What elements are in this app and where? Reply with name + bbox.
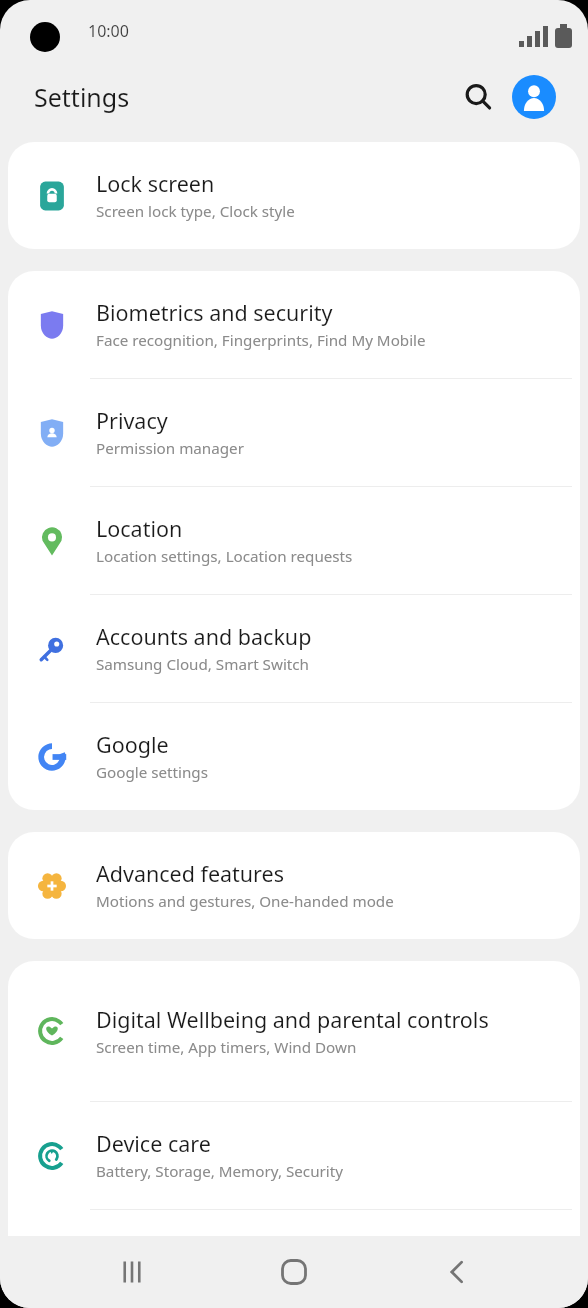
staticText: Location settings, Location requests — [96, 546, 353, 567]
staticText: Privacy — [96, 406, 168, 435]
button[interactable]: Privacy — [8, 379, 580, 486]
staticText: Biometrics and security — [96, 298, 333, 327]
staticText: Apps — [96, 1233, 147, 1262]
button[interactable]: Location — [8, 487, 580, 594]
staticText: Google settings — [96, 762, 208, 783]
button[interactable]: Lock screen — [8, 142, 580, 249]
button[interactable]: Back — [426, 1241, 488, 1303]
staticText: Digital Wellbeing and parental controls — [96, 1005, 489, 1034]
staticText: Lock screen — [96, 169, 215, 198]
staticText: Settings — [34, 80, 130, 114]
button[interactable]: Device care — [8, 1102, 580, 1209]
button[interactable]: Biometrics and security — [8, 271, 580, 378]
staticText: Motions and gestures, One-handed mode — [96, 891, 394, 912]
button[interactable]: Recents — [101, 1241, 163, 1303]
staticText: Location — [96, 514, 183, 543]
button[interactable]: Advanced features — [8, 832, 580, 939]
staticText: 10:00 — [88, 20, 129, 42]
staticText: Face recognition, Fingerprints, Find My … — [96, 330, 426, 351]
button[interactable]: Accounts and backup — [8, 595, 580, 702]
button[interactable]: Home — [263, 1241, 325, 1303]
button[interactable]: Search — [454, 73, 502, 121]
button[interactable]: Apps — [8, 1210, 580, 1308]
staticText: Samsung Cloud, Smart Switch — [96, 654, 309, 675]
staticText: Advanced features — [96, 859, 284, 888]
button[interactable]: Digital Wellbeing and parental controls — [8, 961, 580, 1101]
staticText: Screen lock type, Clock style — [96, 201, 295, 222]
staticText: Device care — [96, 1129, 211, 1158]
button[interactable]: Account — [510, 73, 558, 121]
staticText: Accounts and backup — [96, 622, 312, 651]
button[interactable]: Google — [8, 703, 580, 810]
staticText: Google — [96, 730, 169, 759]
staticText: Permission manager — [96, 438, 244, 459]
staticText: Default apps, App settings — [96, 1265, 284, 1286]
staticText: Screen time, App timers, Wind Down — [96, 1037, 357, 1058]
staticText: Battery, Storage, Memory, Security — [96, 1161, 343, 1182]
